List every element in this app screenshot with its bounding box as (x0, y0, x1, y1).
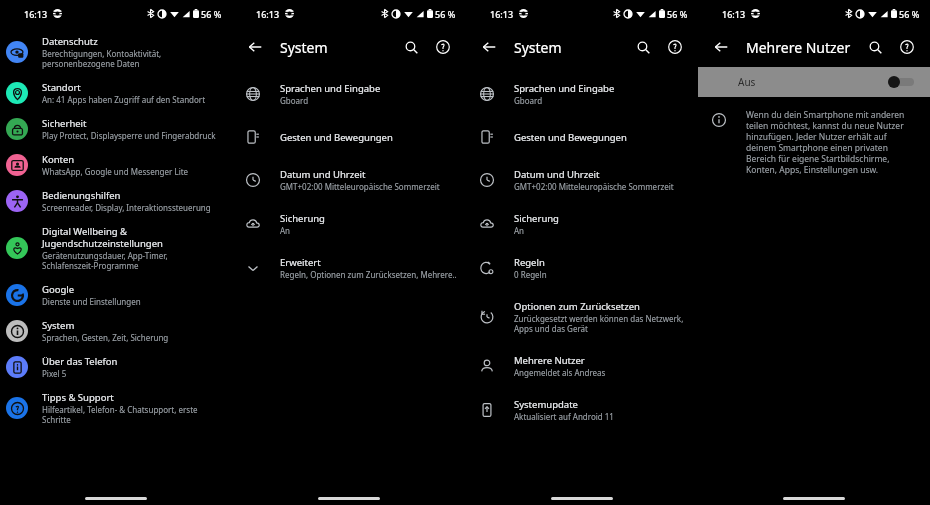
button[interactable]: Optionen zum Zurücksetzen (466, 293, 698, 341)
staticText: GMT+02:00 Mitteleuropäische Sommerzeit (280, 181, 440, 192)
staticText: Sprachen und Eingabe (280, 82, 381, 95)
button[interactable]: Sprachen und Eingabe (232, 75, 466, 113)
staticText: GMT+02:00 Mitteleuropäische Sommerzeit (514, 181, 674, 192)
staticText: Sicherung (280, 212, 325, 225)
staticText: Optionen zum Zurücksetzen (514, 300, 640, 313)
button[interactable]: Help (894, 34, 920, 60)
staticText: Zurückgesetzt werden können das Netzwerk… (514, 313, 684, 334)
staticText: 56 % (667, 8, 688, 20)
staticText: 16:13 (490, 8, 514, 20)
staticText: An (514, 225, 525, 236)
staticText: Mehrere Nutzer (746, 38, 851, 57)
staticText: Datum und Uhrzeit (514, 168, 600, 181)
button[interactable]: Sicherheit (0, 111, 232, 147)
staticText: Sprachen und Eingabe (514, 82, 615, 95)
button[interactable]: Search (862, 34, 888, 60)
button[interactable]: Aus (698, 67, 930, 97)
staticText: Aktualisiert auf Android 11 (514, 411, 614, 422)
staticText: Screenreader, Display, Interaktionssteue… (42, 202, 211, 213)
button[interactable]: Search (630, 34, 656, 60)
staticText: Standort (42, 81, 81, 94)
button[interactable]: Google (0, 277, 232, 313)
button[interactable]: Digital Wellbeing & Jugendschutzeinstell… (0, 219, 232, 277)
button[interactable]: Help (430, 34, 456, 60)
staticText: Sicherung (514, 212, 559, 225)
staticText: Sprachen, Gesten, Zeit, Sicherung (42, 332, 169, 343)
button[interactable]: Systemupdate (466, 391, 698, 429)
staticText: Hilfeartikel, Telefon- & Chatsupport, er… (42, 404, 198, 425)
staticText: Erweitert (280, 256, 321, 269)
staticText: Tipps & Support (42, 391, 114, 404)
staticText: 16:13 (24, 8, 48, 20)
button[interactable]: Datum und Uhrzeit (232, 161, 466, 199)
staticText: Über das Telefon (42, 355, 118, 368)
button[interactable]: Search (398, 34, 424, 60)
staticText: Mehrere Nutzer (514, 354, 585, 367)
staticText: 56 % (899, 8, 920, 20)
button[interactable]: Gesten und Bewegungen (232, 119, 466, 155)
staticText: Regeln (514, 256, 545, 269)
staticText: Systemupdate (514, 398, 578, 411)
button[interactable]: Back (242, 34, 268, 60)
staticText: System (42, 319, 75, 332)
staticText: An (280, 225, 291, 236)
staticText: Pixel 5 (42, 368, 67, 379)
staticText: Wenn du dein Smartphone mit anderen teil… (746, 109, 916, 175)
button[interactable]: Tipps & Support (0, 385, 232, 431)
button[interactable]: Back (476, 34, 502, 60)
staticText: Datum und Uhrzeit (280, 168, 366, 181)
staticText: Digital Wellbeing & Jugendschutzeinstell… (42, 225, 163, 250)
button[interactable]: Back (708, 34, 734, 60)
staticText: Gesten und Bewegungen (514, 131, 627, 144)
staticText: An: 41 Apps haben Zugriff auf den Stando… (42, 94, 206, 105)
staticText: 16:13 (256, 8, 280, 20)
button[interactable]: Regeln (466, 249, 698, 287)
staticText: Gboard (280, 95, 309, 106)
button[interactable]: Datum und Uhrzeit (466, 161, 698, 199)
staticText: Gboard (514, 95, 543, 106)
staticText: 0 Regeln (514, 269, 547, 280)
staticText: Datenschutz (42, 35, 98, 48)
staticText: System (280, 38, 328, 57)
button[interactable]: Bedienungshilfen (0, 183, 232, 219)
staticText: Regeln, Optionen zum Zurücksetzen, Mehre… (280, 269, 457, 280)
staticText: WhatsApp, Google und Messenger Lite (42, 166, 189, 177)
staticText: 56 % (201, 8, 222, 20)
button[interactable]: Sicherung (232, 205, 466, 243)
staticText: 56 % (435, 8, 456, 20)
button[interactable]: Help (662, 34, 688, 60)
button[interactable]: Mehrere Nutzer (466, 347, 698, 385)
staticText: Berechtigungen, Kontoaktivität, personen… (42, 48, 162, 69)
staticText: System (514, 38, 562, 57)
staticText: Play Protect, Displaysperre und Fingerab… (42, 130, 216, 141)
button[interactable]: Standort (0, 75, 232, 111)
button[interactable]: Sprachen und Eingabe (466, 75, 698, 113)
staticText: Dienste und Einstellungen (42, 296, 141, 307)
button[interactable]: Über das Telefon (0, 349, 232, 385)
staticText: Gesten und Bewegungen (280, 131, 393, 144)
button[interactable]: Gesten und Bewegungen (466, 119, 698, 155)
button[interactable]: Sicherung (466, 205, 698, 243)
button[interactable]: Datenschutz (0, 29, 232, 75)
staticText: Bedienungshilfen (42, 189, 121, 202)
button[interactable]: Konten (0, 147, 232, 183)
staticText: Sicherheit (42, 117, 87, 130)
staticText: Angemeldet als Andreas (514, 367, 606, 378)
button[interactable]: Erweitert (232, 249, 466, 287)
staticText: Google (42, 283, 75, 296)
staticText: Gerätenutzungsdauer, App-Timer, Schlafen… (42, 250, 168, 271)
staticText: Aus (738, 75, 756, 89)
button[interactable]: System (0, 313, 232, 349)
staticText: Konten (42, 153, 75, 166)
staticText: 16:13 (722, 8, 746, 20)
